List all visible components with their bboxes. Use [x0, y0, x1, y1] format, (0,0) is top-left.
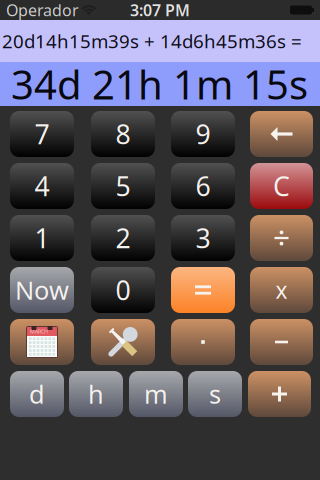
staticText: Operador: [6, 0, 79, 21]
staticText: 20d14h15m39s + 14d6h45m36s =: [2, 29, 302, 53]
staticText: 4: [34, 168, 49, 204]
staticText: 7: [34, 116, 49, 152]
staticText: 0: [115, 272, 130, 308]
button[interactable]: Tools: [91, 319, 155, 365]
staticText: 3: [195, 220, 210, 256]
staticText: h: [88, 377, 104, 411]
button[interactable]: d: [10, 371, 64, 417]
button[interactable]: Clear: [250, 163, 313, 209]
button[interactable]: 8: [91, 111, 155, 157]
button[interactable]: 0: [91, 267, 155, 313]
staticText: 2: [115, 220, 130, 256]
button[interactable]: 9: [171, 111, 235, 157]
button[interactable]: Backspace: [250, 111, 313, 157]
button[interactable]: 7: [10, 111, 74, 157]
button[interactable]: Calendar: [10, 319, 74, 365]
staticText: Now: [15, 273, 69, 307]
staticText: x: [275, 275, 287, 305]
button[interactable]: 3: [171, 215, 235, 261]
staticText: d: [29, 377, 45, 411]
button[interactable]: m: [129, 371, 183, 417]
button[interactable]: Minus: [250, 319, 313, 365]
button[interactable]: 6: [171, 163, 235, 209]
button[interactable]: 2: [91, 215, 155, 261]
button[interactable]: Plus: [248, 371, 311, 417]
button[interactable]: Now: [10, 267, 74, 313]
staticText: 9: [195, 116, 210, 152]
button[interactable]: Equals: [171, 267, 235, 313]
button[interactable]: Multiply: [250, 267, 313, 313]
button[interactable]: h: [69, 371, 123, 417]
staticText: 6: [195, 168, 210, 204]
button[interactable]: Divide: [250, 215, 313, 261]
button[interactable]: 4: [10, 163, 74, 209]
staticText: 34d 21h 1m 15s: [11, 57, 308, 110]
button[interactable]: 5: [91, 163, 155, 209]
staticText: 5: [115, 168, 130, 204]
staticText: m: [144, 377, 168, 411]
button[interactable]: Decimal point: [171, 319, 235, 365]
staticText: 8: [115, 116, 130, 152]
staticText: 3:07 PM: [130, 0, 190, 21]
button[interactable]: 1: [10, 215, 74, 261]
button[interactable]: s: [188, 371, 242, 417]
staticText: 1: [34, 220, 49, 256]
staticText: C: [273, 168, 290, 204]
staticText: MARCH: [30, 328, 48, 335]
staticText: s: [209, 377, 221, 411]
